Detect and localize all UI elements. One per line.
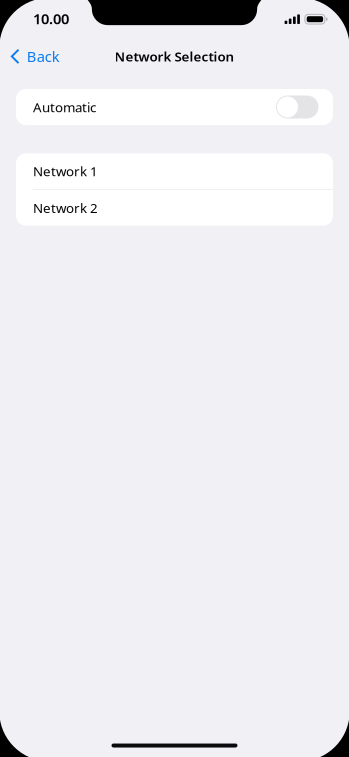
button[interactable]: Network 2 [16,190,333,226]
staticText: Network Selection [114,47,234,65]
button[interactable]: Back [0,38,92,75]
staticText: Network 1 [33,162,98,180]
staticText: Automatic [33,98,96,116]
button[interactable]: Automatic [16,89,333,125]
staticText: Back [27,47,60,66]
button[interactable]: Network 1 [16,153,333,189]
staticText: 10.00 [33,9,69,28]
staticText: Network 2 [33,199,98,217]
